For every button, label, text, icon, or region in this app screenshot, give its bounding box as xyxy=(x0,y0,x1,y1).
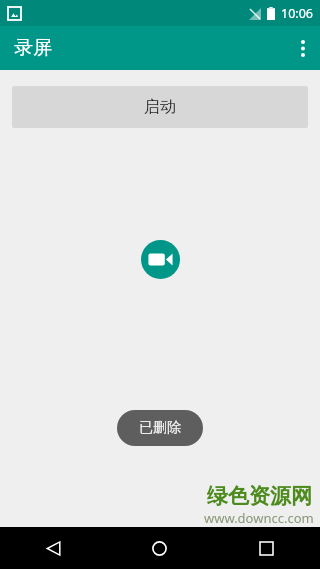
staticText: 绿色资源网 xyxy=(207,483,312,509)
button[interactable]: Back xyxy=(0,527,106,569)
staticText: 10:06 xyxy=(281,5,313,22)
staticText: 启动 xyxy=(144,97,176,117)
button[interactable]: 启动 xyxy=(12,86,308,128)
staticText: 已删除 xyxy=(139,419,181,437)
staticText: www.downcc.com xyxy=(204,509,314,527)
button[interactable]: Home xyxy=(106,527,213,569)
button[interactable]: Recording xyxy=(141,240,180,279)
button[interactable]: More options xyxy=(286,26,320,70)
staticText: 录屏 xyxy=(14,36,52,60)
button[interactable]: Recents xyxy=(213,527,320,569)
